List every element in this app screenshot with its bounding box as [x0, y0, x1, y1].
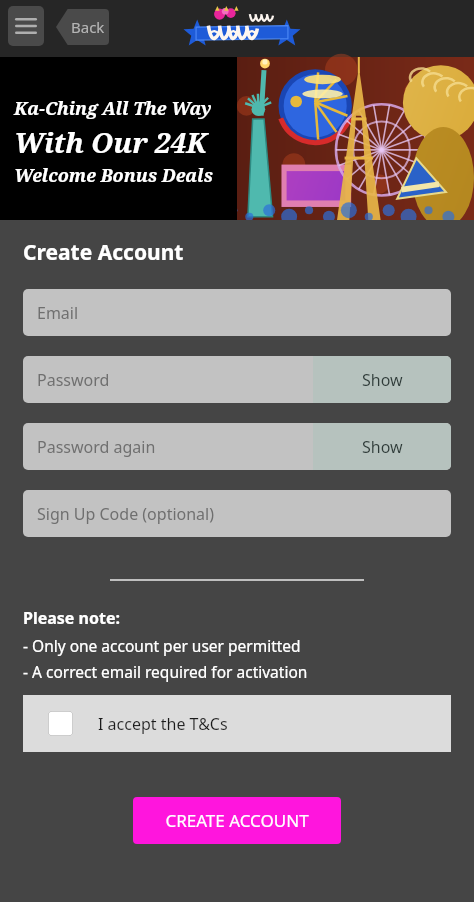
staticText: Welcome Bonus Deals [14, 163, 213, 188]
button[interactable]: Password again [23, 423, 313, 470]
button[interactable]: Password [23, 356, 313, 403]
button[interactable]: Show [313, 423, 451, 470]
staticText: Show [362, 369, 403, 391]
staticText: Password again [37, 436, 156, 458]
button[interactable]: CREATE ACCOUNT [133, 797, 341, 844]
button[interactable]: Eddy Vegas logo [186, 5, 298, 53]
staticText: I accept the T&Cs [98, 713, 228, 735]
staticText: Sign Up Code (optional) [37, 503, 215, 525]
button[interactable]: Back [56, 9, 109, 45]
button[interactable]: Show [313, 356, 451, 403]
staticText: Password [37, 369, 110, 391]
staticText: Back [71, 17, 105, 37]
staticText: Email [37, 302, 79, 324]
button[interactable]: Sign Up Code (optional) [23, 490, 451, 537]
staticText: - A correct email required for activatio… [23, 661, 308, 682]
staticText: CREATE ACCOUNT [165, 809, 309, 832]
staticText: With Our 24K [14, 123, 207, 161]
staticText: - Only one account per user permitted [23, 635, 301, 656]
staticText: Please note: [23, 607, 120, 629]
button[interactable]: Menu [8, 6, 44, 46]
staticText: Create Account [23, 238, 184, 267]
staticText: Ka-Ching All The Way [14, 96, 212, 121]
staticText: Show [362, 436, 403, 458]
button[interactable]: I accept the T&Cs [23, 695, 451, 752]
button[interactable]: Email [23, 289, 451, 336]
